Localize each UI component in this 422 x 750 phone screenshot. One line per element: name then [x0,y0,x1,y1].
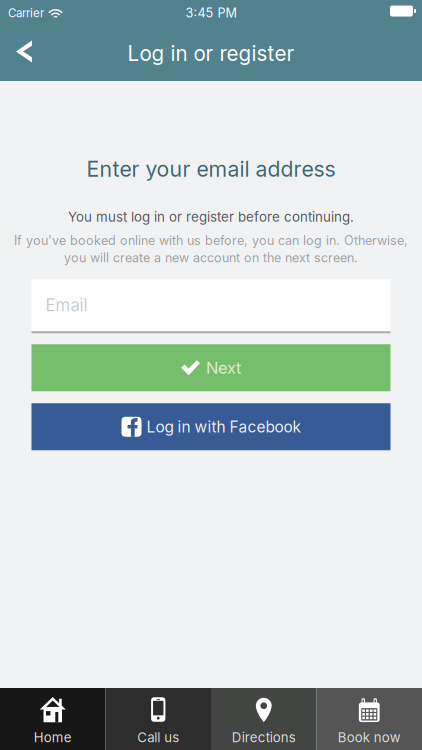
staticText: Carrier [8,6,44,20]
staticText: You must log in or register before conti… [68,209,354,225]
button[interactable]: Log in with Facebook [31,403,390,450]
staticText: you will create a new account on the nex… [64,250,358,265]
staticText: Book now [338,729,401,745]
button[interactable]: Home [0,688,105,750]
button[interactable]: Next [31,344,390,391]
staticText: Log in or register [127,41,294,66]
staticText: Directions [232,729,296,745]
staticText: Enter your email address [86,156,335,182]
staticText: Log in with Facebook [146,417,300,436]
button[interactable]: Book now [316,688,422,750]
button[interactable]: Back [0,26,48,81]
staticText: Home [34,729,72,745]
button[interactable]: Directions [211,688,316,750]
button[interactable]: Call us [105,688,211,750]
staticText: If you've booked online with us before, … [14,233,408,248]
staticText: Email [45,295,87,315]
staticText: Next [206,358,241,378]
staticText: 3:45 PM [185,5,236,21]
staticText: Call us [137,729,179,745]
